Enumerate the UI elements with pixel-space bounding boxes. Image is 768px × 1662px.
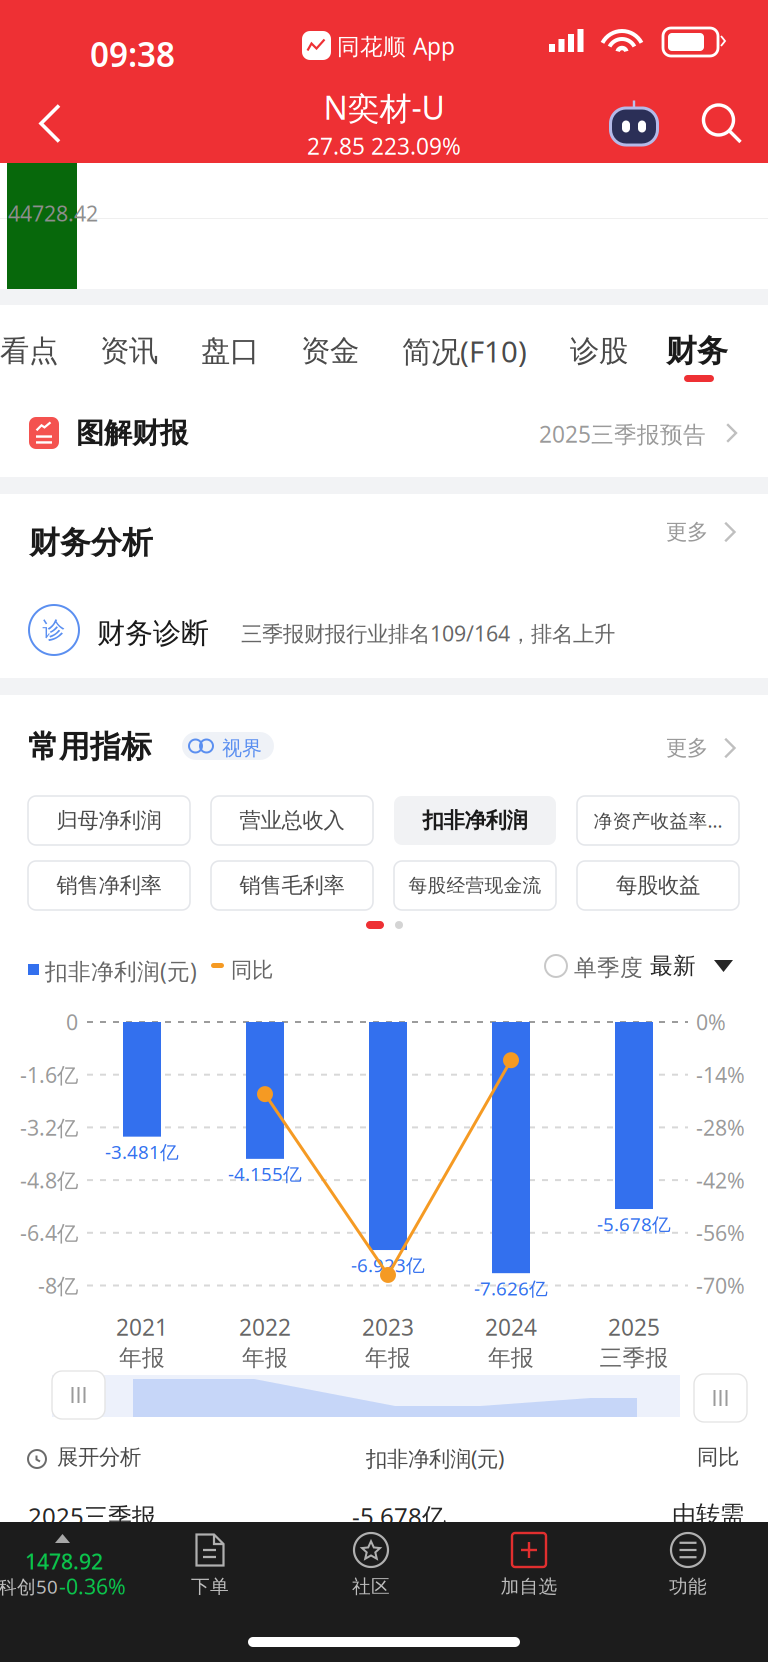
- staticText: 最新: [650, 952, 696, 980]
- staticText: 资讯: [100, 333, 158, 369]
- staticText: 2025三季报预告: [539, 419, 706, 449]
- button[interactable]: Range start handle: [52, 1371, 105, 1419]
- staticText: 社区: [352, 1575, 390, 1598]
- staticText: -70%: [696, 1271, 745, 1300]
- staticText: 科创50: [0, 1574, 58, 1599]
- staticText: 销售净利率: [56, 872, 161, 899]
- staticText: 诊股: [570, 333, 628, 369]
- staticText: 同比: [231, 957, 273, 983]
- staticText: -8亿: [38, 1271, 78, 1300]
- staticText: 简况(F10): [402, 331, 527, 370]
- staticText: -5.678亿: [597, 1212, 671, 1236]
- button[interactable]: AI assistant: [592, 84, 676, 163]
- staticText: 更多: [666, 519, 708, 545]
- button[interactable]: 诊: [0, 592, 768, 664]
- button[interactable]: 简况(F10): [379, 305, 550, 397]
- button[interactable]: 科创50 index: [0, 1522, 140, 1632]
- staticText: 常用指标: [28, 728, 152, 766]
- staticText: 营业总收入: [239, 807, 344, 834]
- staticText: 0: [66, 1008, 78, 1036]
- button[interactable]: Range end handle: [694, 1374, 747, 1422]
- button[interactable]: 更多: [666, 494, 746, 570]
- button[interactable]: 营业总收入: [211, 796, 373, 845]
- staticText: 1478.92: [25, 1547, 103, 1575]
- staticText: 财务诊断: [97, 616, 209, 650]
- staticText: 单季度: [574, 954, 643, 982]
- staticText: -4.155亿: [228, 1161, 302, 1186]
- button[interactable]: 诊股: [549, 305, 649, 397]
- button[interactable]: 看点: [0, 305, 80, 397]
- button[interactable]: 加自选: [469, 1522, 589, 1632]
- staticText: 09:38: [90, 32, 175, 76]
- button[interactable]: 每股经营现金流: [394, 861, 556, 910]
- staticText: 2025三季报: [28, 1500, 156, 1532]
- staticText: -7.626亿: [474, 1276, 548, 1301]
- staticText: 同花顺 App: [337, 31, 455, 61]
- staticText: 净资产收益率...: [593, 808, 722, 833]
- button[interactable]: 净资产收益率...: [577, 796, 739, 845]
- button[interactable]: 下单: [150, 1522, 270, 1632]
- staticText: 诊: [42, 616, 65, 644]
- staticText: 财务: [666, 332, 728, 370]
- staticText: 资金: [301, 333, 359, 369]
- staticText: 由转需: [672, 1500, 744, 1529]
- staticText: -1.6亿: [20, 1060, 78, 1089]
- staticText: 每股收益: [616, 872, 700, 899]
- staticText: 归母净利润: [56, 807, 161, 834]
- staticText: 加自选: [500, 1575, 557, 1598]
- staticText: 三季报财报行业排名109/164，排名上升: [241, 619, 615, 647]
- staticText: 视界: [222, 736, 262, 761]
- button[interactable]: 扣非净利润: [394, 796, 556, 845]
- button[interactable]: 归母净利润: [28, 796, 190, 845]
- button[interactable]: 图解财报: [0, 390, 768, 477]
- staticText: -6.923亿: [351, 1253, 425, 1277]
- button[interactable]: 资金: [280, 305, 380, 397]
- button[interactable]: 盘口: [180, 305, 280, 397]
- staticText: -14%: [696, 1060, 745, 1089]
- button[interactable]: 资讯: [78, 305, 180, 397]
- staticText: 看点: [0, 333, 58, 369]
- button[interactable]: Back: [0, 84, 100, 163]
- staticText: 2025: [608, 1312, 660, 1342]
- staticText: 同比: [697, 1444, 739, 1470]
- staticText: 2022: [239, 1312, 291, 1342]
- staticText: 扣非净利润(元): [366, 1444, 504, 1472]
- staticText: 功能: [669, 1575, 707, 1598]
- staticText: N奕材-U: [323, 86, 444, 129]
- button[interactable]: 财务: [648, 305, 746, 390]
- staticText: 盘口: [201, 333, 259, 369]
- staticText: 扣非净利润(元): [45, 956, 197, 986]
- staticText: 每股经营现金流: [408, 874, 541, 897]
- staticText: 年报: [119, 1344, 165, 1372]
- staticText: 展开分析: [57, 1444, 141, 1470]
- staticText: 2023: [362, 1312, 414, 1342]
- button[interactable]: 更多: [666, 713, 746, 783]
- button[interactable]: 每股收益: [577, 861, 739, 910]
- button[interactable]: 视界: [182, 732, 274, 760]
- staticText: 下单: [191, 1575, 229, 1598]
- button[interactable]: 销售毛利率: [211, 861, 373, 910]
- staticText: -0.36%: [59, 1572, 126, 1600]
- button[interactable]: 销售净利率: [28, 861, 190, 910]
- button[interactable]: 社区: [311, 1522, 431, 1632]
- staticText: 2021: [116, 1312, 168, 1342]
- staticText: 图解财报: [76, 416, 188, 450]
- staticText: 三季报: [599, 1344, 668, 1372]
- button[interactable]: Search: [676, 84, 768, 163]
- button[interactable]: 最新: [650, 943, 750, 989]
- staticText: -42%: [696, 1166, 745, 1194]
- staticText: 年报: [488, 1344, 534, 1372]
- staticText: 年报: [242, 1344, 288, 1372]
- staticText: 年报: [365, 1344, 411, 1372]
- staticText: -5.678亿: [352, 1500, 446, 1532]
- staticText: 27.85 223.09%: [307, 131, 461, 161]
- staticText: -56%: [696, 1219, 745, 1247]
- button[interactable]: 功能: [628, 1522, 748, 1632]
- staticText: 扣非净利润: [422, 807, 527, 834]
- staticText: 2024: [485, 1312, 537, 1342]
- staticText: 更多: [666, 735, 708, 761]
- staticText: 销售毛利率: [239, 872, 344, 899]
- staticText: 0%: [696, 1008, 726, 1036]
- staticText: -28%: [696, 1113, 745, 1141]
- staticText: 44728.42: [8, 199, 98, 227]
